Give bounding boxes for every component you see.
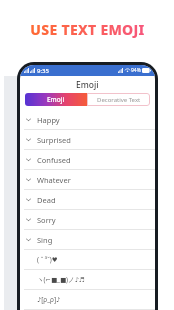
staticText: Sorry (37, 215, 56, 225)
button[interactable]: Decorative Text (87, 93, 150, 106)
staticText: Confused (37, 155, 71, 165)
staticText: Surprised (37, 135, 71, 145)
other: Expand Sing (25, 236, 32, 243)
button[interactable]: Expand Dead (20, 190, 155, 209)
button[interactable]: ヽ(⌐■_■)ノ♪♬ (20, 270, 155, 289)
button[interactable]: ( ˘ ³˘)♥ (20, 250, 155, 269)
button[interactable]: Emoji (25, 93, 87, 106)
staticText: Dead (37, 195, 56, 205)
staticText: Happy (37, 115, 60, 125)
other: Expand Happy (25, 116, 32, 123)
other: Expand Surprised (25, 136, 32, 143)
staticText: USE TEXT EMOJI (30, 20, 145, 39)
staticText: Sing (37, 235, 53, 245)
button[interactable]: Expand Sing (20, 230, 155, 249)
button[interactable]: ♪[ρ_ρ]♪ (20, 290, 155, 309)
other: Expand Dead (25, 196, 32, 203)
staticText: Emoji (47, 95, 65, 104)
staticText: ( ˘ ³˘)♥ (37, 255, 58, 264)
staticText: ♪[ρ_ρ]♪ (37, 295, 61, 304)
other: Expand Whatever (25, 176, 32, 183)
staticText: 9:35 (37, 67, 49, 75)
staticText: Decorative Text (97, 96, 141, 104)
staticText: Whatever (37, 175, 71, 185)
button[interactable]: Expand Sorry (20, 210, 155, 229)
staticText: Emoji (76, 79, 99, 91)
other: Expand Sorry (25, 216, 32, 223)
button[interactable]: Expand Surprised (20, 130, 155, 149)
staticText: 94% (131, 67, 141, 74)
button[interactable]: Expand Confused (20, 150, 155, 169)
button[interactable]: Expand Whatever (20, 170, 155, 189)
staticText: ヽ(⌐■_■)ノ♪♬ (37, 275, 85, 284)
other: Expand Confused (25, 156, 32, 163)
button[interactable]: Expand Happy (20, 110, 155, 129)
